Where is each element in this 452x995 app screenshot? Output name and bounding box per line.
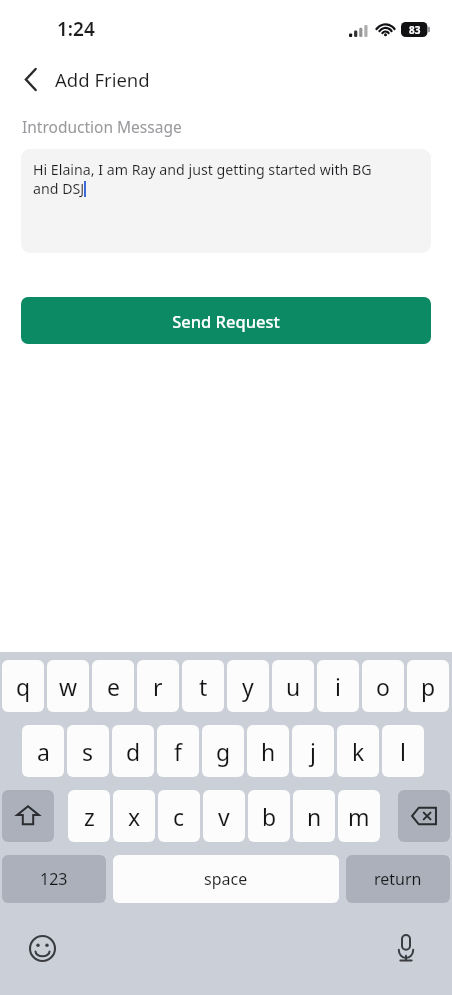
button[interactable]: Backspace [398, 790, 450, 842]
button[interactable]: Voice input [388, 930, 424, 966]
button[interactable]: Hi Elaina, I am Ray and just getting sta… [21, 149, 431, 253]
staticText: e [107, 671, 120, 702]
button[interactable]: x [113, 790, 155, 842]
staticText: i [335, 671, 341, 702]
staticText: return [374, 868, 422, 890]
staticText: l [400, 736, 406, 767]
staticText: n [307, 801, 322, 832]
button[interactable]: w [47, 660, 89, 712]
staticText: d [126, 736, 141, 767]
staticText: Introduction Message [22, 116, 182, 137]
button[interactable]: u [272, 660, 314, 712]
staticText: q [16, 671, 31, 702]
button[interactable]: h [247, 725, 289, 777]
staticText: g [216, 736, 231, 767]
button[interactable]: m [338, 790, 380, 842]
button[interactable]: q [2, 660, 44, 712]
staticText: u [286, 671, 301, 702]
staticText: p [421, 671, 436, 702]
staticText: and DSJ [33, 179, 85, 198]
button[interactable]: space [113, 855, 339, 903]
staticText: y [242, 671, 254, 702]
button[interactable]: s [67, 725, 109, 777]
staticText: m [348, 801, 370, 832]
staticText: w [59, 671, 78, 702]
staticText: a [37, 736, 50, 767]
staticText: r [153, 671, 163, 702]
button[interactable]: d [112, 725, 154, 777]
staticText: z [84, 801, 95, 832]
staticText: Hi Elaina, I am Ray and just getting sta… [33, 160, 372, 179]
staticText: c [173, 801, 185, 832]
button[interactable]: j [292, 725, 334, 777]
staticText: 123 [40, 868, 68, 890]
staticText: f [174, 736, 182, 767]
button[interactable]: k [337, 725, 379, 777]
staticText: v [218, 801, 230, 832]
staticText: t [199, 671, 208, 702]
button[interactable]: v [203, 790, 245, 842]
button[interactable]: Send Request [21, 297, 431, 344]
button[interactable]: g [202, 725, 244, 777]
button[interactable]: p [407, 660, 449, 712]
staticText: s [82, 736, 94, 767]
button[interactable]: f [157, 725, 199, 777]
button[interactable]: t [182, 660, 224, 712]
staticText: j [310, 736, 316, 767]
button[interactable]: Emoji [24, 930, 60, 966]
button[interactable]: n [293, 790, 335, 842]
button[interactable]: i [317, 660, 359, 712]
button[interactable]: 123 [2, 855, 106, 903]
button[interactable]: a [22, 725, 64, 777]
button[interactable]: Back [12, 60, 50, 98]
button[interactable]: l [382, 725, 424, 777]
staticText: k [352, 736, 365, 767]
button[interactable]: Shift [2, 790, 54, 842]
button[interactable]: b [248, 790, 290, 842]
button[interactable]: o [362, 660, 404, 712]
button[interactable]: e [92, 660, 134, 712]
staticText: 83 [409, 23, 421, 37]
button[interactable]: y [227, 660, 269, 712]
staticText: 1:24 [57, 16, 95, 42]
staticText: space [204, 868, 248, 890]
staticText: Send Request [172, 310, 280, 332]
button[interactable]: return [346, 855, 450, 903]
staticText: x [128, 801, 141, 832]
staticText: b [262, 801, 277, 832]
staticText: Add Friend [55, 67, 150, 92]
staticText: o [376, 671, 390, 702]
button[interactable]: c [158, 790, 200, 842]
button[interactable]: z [68, 790, 110, 842]
staticText: h [261, 736, 276, 767]
button[interactable]: r [137, 660, 179, 712]
